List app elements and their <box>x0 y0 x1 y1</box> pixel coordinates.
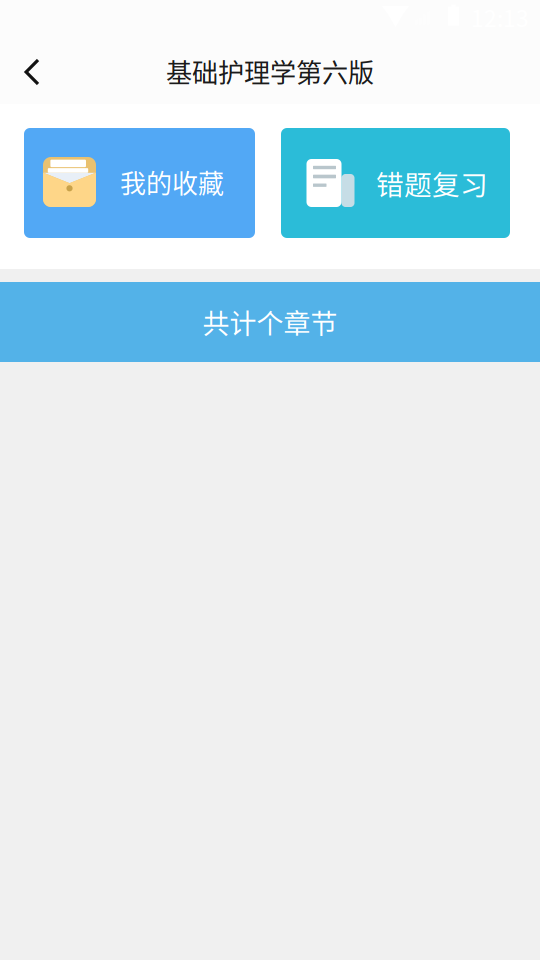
button[interactable]: 错题复习 <box>281 128 510 238</box>
staticText: 我的收藏 <box>120 163 224 201</box>
button[interactable]: Back <box>2 43 62 101</box>
staticText: 共计个章节 <box>202 302 337 341</box>
staticText: 基础护理学第六版 <box>166 52 374 90</box>
staticText: 错题复习 <box>376 163 488 203</box>
button[interactable]: 共计个章节 <box>0 282 540 362</box>
button[interactable]: 我的收藏 <box>24 128 255 238</box>
